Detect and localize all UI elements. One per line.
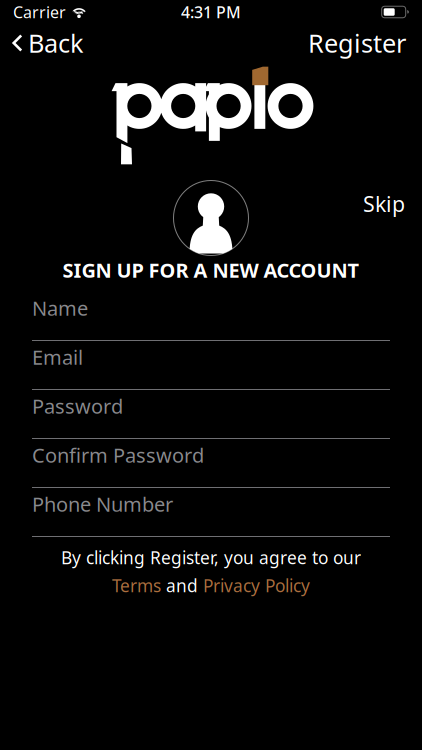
staticText: Password (32, 393, 123, 419)
staticText: and (166, 574, 198, 597)
staticText: Carrier (13, 1, 66, 23)
button[interactable]: Skip (346, 181, 422, 226)
staticText: SIGN UP FOR A NEW ACCOUNT (62, 257, 359, 283)
staticText: Name (32, 295, 88, 321)
staticText: 4:31 PM (181, 1, 241, 23)
staticText: Confirm Password (32, 442, 204, 468)
staticText: Skip (363, 189, 405, 218)
staticText: Phone Number (32, 491, 173, 517)
staticText: Privacy Policy (203, 574, 310, 597)
button[interactable]: Register (272, 24, 422, 62)
staticText: Register (308, 26, 406, 60)
staticText: Terms (112, 574, 161, 597)
button[interactable]: Privacy Policy (203, 574, 310, 597)
button[interactable]: Terms (112, 574, 161, 597)
staticText: Back (28, 26, 84, 60)
staticText: Email (32, 344, 83, 370)
staticText: By clicking Register, you agree to our (61, 546, 361, 569)
button[interactable]: Back (0, 24, 112, 62)
